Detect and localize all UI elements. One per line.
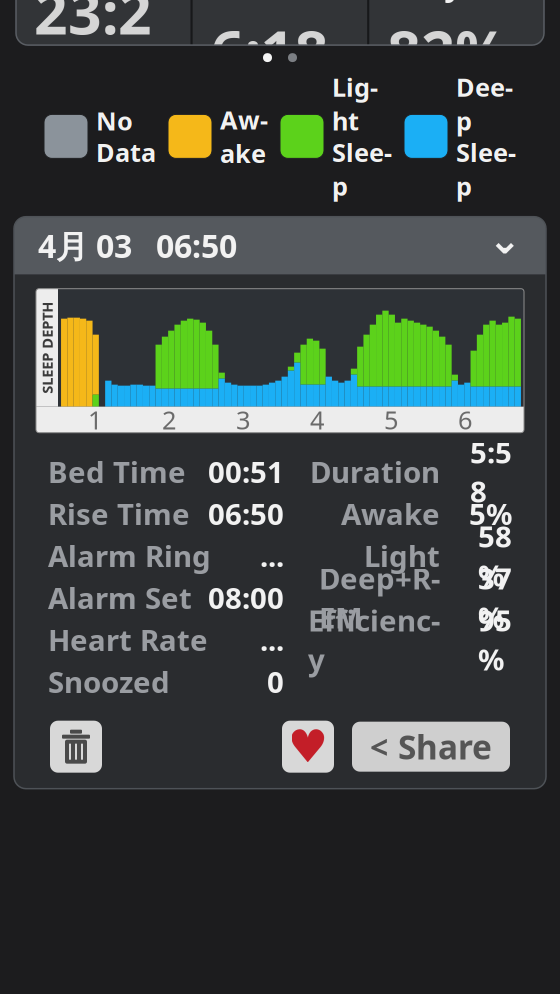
button[interactable]: Average [193, 0, 367, 45]
button[interactable]: Delete [50, 721, 102, 773]
staticText: Snoozed [48, 662, 170, 701]
staticText: Share [398, 724, 492, 769]
button[interactable]: 4月 03 06:50 [14, 217, 546, 275]
staticText: 06:50 [208, 494, 284, 533]
staticText: 4 [310, 403, 324, 436]
button[interactable]: Average [16, 0, 191, 45]
staticText: Rise Time [48, 494, 190, 533]
staticText: Sleep [456, 135, 516, 203]
staticText: Light [332, 70, 378, 137]
staticText: 58% [478, 517, 512, 595]
staticText: 2 [162, 403, 176, 436]
staticText: < [370, 725, 388, 768]
staticText: 82% [387, 12, 508, 90]
staticText: Awake [220, 103, 268, 170]
button[interactable]: Average [369, 0, 544, 45]
staticText: Deep+REM [319, 559, 440, 637]
staticText: ... [260, 536, 284, 575]
staticText: Alarm Set [48, 578, 192, 617]
staticText: 6:18 [211, 12, 329, 90]
staticText: 5 [384, 403, 398, 436]
staticText: Bed Time [48, 452, 186, 491]
staticText: ... [260, 620, 284, 659]
staticText: Sleep [332, 135, 392, 203]
staticText: No [96, 104, 133, 137]
staticText: Light [364, 536, 440, 575]
staticText: 6 [458, 403, 472, 436]
staticText: 0 [267, 662, 284, 701]
staticText: Efficiency [387, 0, 476, 4]
staticText: 95% [478, 601, 512, 679]
staticText: 5% [469, 494, 512, 533]
staticText: 4月 03 06:50 [38, 224, 237, 267]
staticText: 3 [236, 403, 250, 436]
staticText: Heart Rate [48, 620, 208, 659]
staticText: SLEEP DEPTH [1, 338, 93, 357]
staticText: 1 [88, 403, 102, 436]
staticText: Data [96, 135, 156, 169]
staticText: Deep [456, 70, 513, 137]
button[interactable]: Favorite [282, 721, 334, 773]
staticText: Duration [310, 452, 440, 491]
staticText: 00:51 [208, 452, 284, 491]
staticText: ♥ [287, 721, 328, 772]
staticText: Awake [341, 494, 440, 533]
staticText: 37% [478, 559, 512, 637]
staticText: 5:58 [470, 433, 512, 511]
staticText: ⌄ [488, 217, 522, 262]
staticText: Alarm Ring [48, 536, 211, 575]
button[interactable]: < [352, 722, 510, 772]
staticText: Efficiency [308, 601, 440, 679]
staticText: 23:27 [34, 0, 152, 129]
staticText: 08:00 [208, 578, 284, 617]
